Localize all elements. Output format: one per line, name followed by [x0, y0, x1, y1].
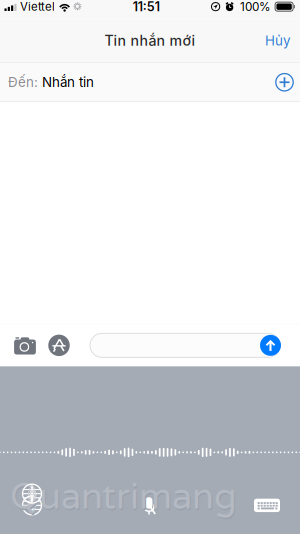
button[interactable]: Next keyboard	[22, 495, 42, 515]
button[interactable]: Apps	[48, 334, 70, 356]
staticText: Quantrimang	[11, 477, 238, 520]
button[interactable]: Stop dictation	[142, 495, 156, 515]
staticText: 11:51	[133, 0, 160, 14]
staticText: Quantrimang	[10, 476, 237, 519]
button[interactable]: Add recipient	[275, 73, 294, 92]
staticText: Tin nhắn mới	[104, 32, 195, 49]
button[interactable]: Hủy	[255, 24, 300, 58]
button[interactable]: Send	[260, 335, 281, 356]
staticText: Đến:	[8, 74, 38, 90]
staticText: Nhắn tin	[42, 74, 94, 90]
staticText: Viettel	[20, 0, 55, 14]
button[interactable]: Show keyboard	[254, 498, 280, 512]
staticText: 100%	[240, 0, 271, 14]
staticText: Hủy	[265, 33, 290, 49]
button[interactable]: Camera	[14, 336, 36, 355]
